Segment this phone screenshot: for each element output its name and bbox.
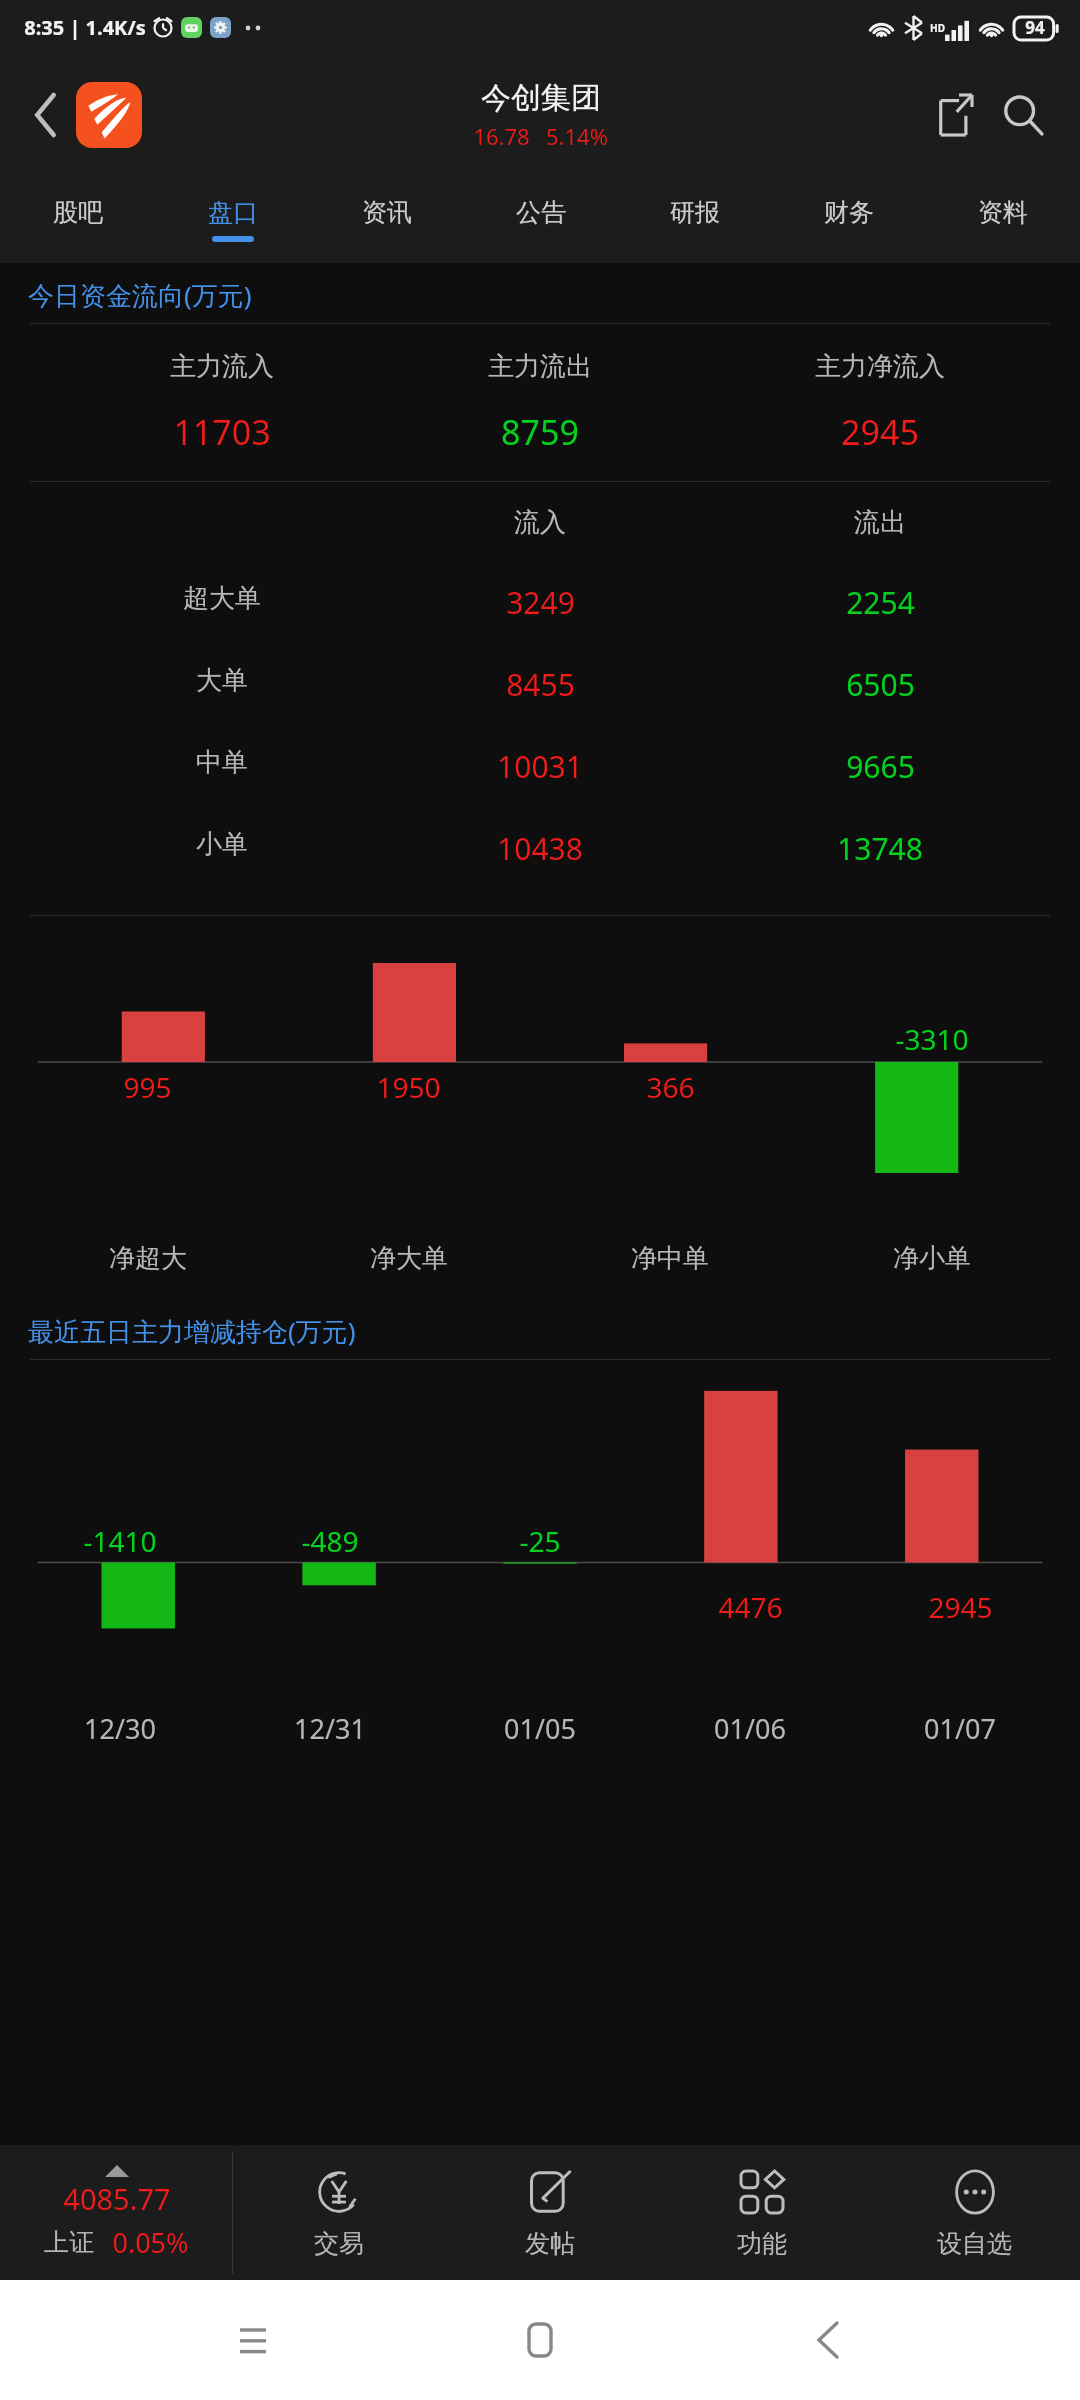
button[interactable]: 财务 [772,175,926,263]
button[interactable]: 设自选 [868,2145,1080,2280]
staticText: 9665 [846,746,915,787]
staticText: 超大单 [183,582,261,615]
button[interactable]: App icon [76,82,142,148]
staticText: 公告 [516,197,566,228]
staticText: 大单 [196,664,248,697]
button[interactable]: 公告 [464,175,618,263]
button[interactable]: 资讯 [310,175,464,263]
button[interactable]: Back [793,2305,863,2375]
staticText: 小单 [196,828,248,861]
staticText: 13748 [837,828,923,869]
staticText: 2254 [846,582,915,623]
staticText: 净超大 [109,1242,187,1275]
button[interactable]: 4085.77 [0,2145,232,2280]
staticText: 净大单 [370,1242,448,1275]
button[interactable]: 盘口 [155,175,310,263]
button[interactable]: 研报 [618,175,772,263]
staticText: HD [930,21,945,35]
staticText: 资料 [978,197,1028,228]
staticText: 流入 [514,506,566,539]
staticText: 发帖 [525,2228,575,2259]
staticText: 6505 [846,664,915,705]
staticText: 3249 [506,582,575,623]
staticText: 995 [123,1068,172,1106]
staticText: 主力流出 [488,350,592,383]
button[interactable]: 大单 [0,643,1080,725]
button[interactable]: Home [505,2305,575,2375]
staticText: 今创集团 [481,79,601,117]
staticText: 8759 [501,409,579,455]
button[interactable]: Back [18,87,74,143]
staticText: 10438 [497,828,583,869]
staticText: 财务 [824,197,874,228]
staticText: 0.05% [112,2224,189,2261]
staticText: 8455 [506,664,575,705]
button[interactable]: Search [992,84,1054,146]
staticText: 今日资金流向(万元) [28,277,252,313]
button[interactable]: 资料 [926,175,1080,263]
button[interactable]: 小单 [0,807,1080,889]
staticText: 中单 [196,746,248,779]
button[interactable]: 功能 [656,2145,868,2280]
staticText: 主力净流入 [815,350,945,383]
staticText: 上证 [44,2227,94,2258]
staticText: 16.78 [473,121,530,151]
button[interactable]: 超大单 [0,561,1080,643]
button[interactable]: 中单 [0,725,1080,807]
staticText: 净中单 [631,1242,709,1275]
staticText: 资讯 [362,197,412,228]
staticText: 净小单 [893,1242,971,1275]
button[interactable]: 股吧 [0,175,155,263]
button[interactable]: 交易 [233,2145,444,2280]
staticText: 研报 [670,197,720,228]
staticText: 2945 [841,409,919,455]
staticText: 功能 [737,2228,787,2259]
staticText: 交易 [314,2228,364,2259]
staticText: 股吧 [53,197,103,228]
button[interactable]: Recents [218,2305,288,2375]
staticText: -1410 [83,1522,157,1560]
button[interactable]: 发帖 [444,2145,656,2280]
staticText: 5.14% [546,121,608,151]
staticText: 2945 [928,1588,993,1626]
staticText: -25 [519,1522,561,1560]
staticText: 流出 [854,506,906,539]
staticText: 01/06 [714,1710,786,1747]
staticText: 1950 [376,1068,441,1106]
staticText: 4476 [718,1588,783,1626]
staticText: 4085.77 [63,2179,171,2218]
staticText: 01/07 [924,1710,996,1747]
staticText: 94 [1025,16,1045,39]
staticText: -3310 [895,1020,969,1058]
button[interactable]: Share [924,84,986,146]
staticText: 设自选 [937,2228,1012,2259]
staticText: 366 [646,1068,695,1106]
staticText: -489 [301,1522,359,1560]
staticText: 11703 [173,409,271,455]
staticText: 10031 [497,746,583,787]
staticText: 盘口 [208,197,258,228]
staticText: 12/31 [294,1710,366,1747]
staticText: 主力流入 [170,350,274,383]
staticText: 最近五日主力增减持仓(万元) [28,1313,356,1349]
staticText: 8:35 | 1.4K/s [24,14,146,41]
staticText: 01/05 [504,1710,576,1747]
staticText: 12/30 [84,1710,156,1747]
